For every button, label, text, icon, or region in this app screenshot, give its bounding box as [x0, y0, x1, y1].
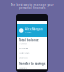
staticText: Premium — [25, 32, 31, 33]
staticText: Transfer to savings — [19, 62, 45, 65]
staticText: Recent activity — [19, 48, 28, 49]
staticText: Alex Morgan — [25, 27, 43, 31]
staticText: Total balance — [19, 38, 39, 42]
staticText: personal finances — [19, 6, 45, 10]
staticText: The best way to manage your — [10, 3, 53, 7]
staticText: Spotify Premium — [19, 52, 29, 54]
staticText: $12,480.55 — [19, 43, 27, 45]
staticText: Whole Foods — [19, 57, 28, 59]
staticText: Apple Store — [19, 67, 27, 69]
